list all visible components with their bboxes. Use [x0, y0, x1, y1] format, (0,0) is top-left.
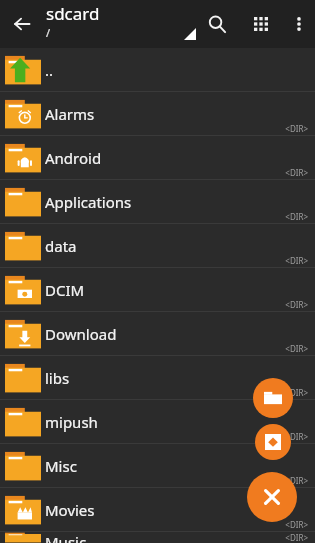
staticText: / [46, 25, 51, 40]
staticText: Movies [45, 500, 95, 520]
staticText: <DIR> [285, 123, 308, 134]
staticText: <DIR> [285, 387, 308, 398]
button[interactable]: Alarms [0, 92, 315, 135]
button[interactable]: Search [197, 4, 237, 44]
staticText: sdcard [46, 2, 100, 25]
staticText: <DIR> [285, 299, 308, 310]
staticText: Applications [45, 192, 132, 212]
staticText: mipush [45, 412, 98, 432]
button[interactable]: .. [0, 48, 315, 91]
staticText: <DIR> [285, 255, 308, 266]
button[interactable]: Movies [0, 488, 315, 531]
staticText: DCIM [45, 280, 85, 300]
staticText: <DIR> [285, 343, 308, 354]
button[interactable]: Applications [0, 180, 315, 223]
staticText: <DIR> [285, 519, 308, 530]
staticText: <DIR> [285, 167, 308, 178]
button[interactable]: Android [0, 136, 315, 179]
staticText: Misc [45, 456, 77, 476]
staticText: Download [45, 324, 117, 344]
staticText: Music [45, 532, 87, 543]
staticText: <DIR> [285, 211, 308, 222]
button[interactable]: data [0, 224, 315, 267]
staticText: <DIR> [285, 532, 308, 542]
button[interactable]: Close menu [247, 472, 297, 522]
staticText: .. [45, 60, 54, 80]
staticText: <DIR> [285, 475, 308, 486]
button[interactable]: Misc [0, 444, 315, 487]
staticText: <DIR> [285, 431, 308, 442]
button[interactable]: libs [0, 356, 315, 399]
button[interactable]: Download [0, 312, 315, 355]
button[interactable]: Music [0, 532, 315, 543]
staticText: data [45, 236, 77, 256]
button[interactable]: DCIM [0, 268, 315, 311]
button[interactable]: Extract archive [255, 424, 291, 460]
staticText: Android [45, 148, 102, 168]
button[interactable]: Grid view [241, 4, 281, 44]
button[interactable]: mipush [0, 400, 315, 443]
button[interactable]: More options [281, 6, 315, 42]
button[interactable]: New folder [253, 378, 293, 418]
staticText: Alarms [45, 104, 95, 124]
button[interactable]: Back [2, 4, 42, 44]
staticText: libs [45, 368, 70, 388]
